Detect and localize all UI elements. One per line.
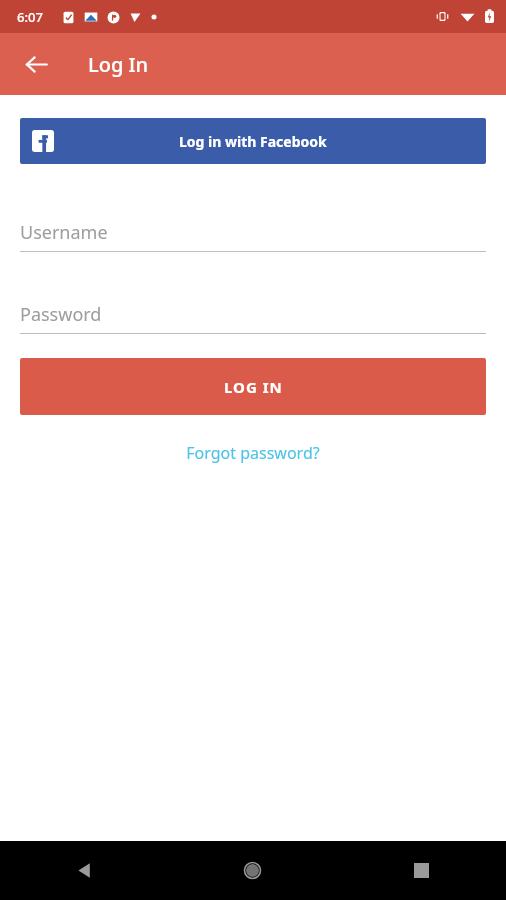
staticText: LOG IN (224, 377, 283, 397)
button[interactable]: Recent apps (337, 841, 506, 900)
staticText: Log In (88, 51, 149, 78)
button[interactable]: Password (20, 302, 486, 334)
staticText: Username (20, 220, 108, 245)
button[interactable]: Forgot password? (174, 438, 332, 468)
staticText: 6:07 (17, 8, 43, 26)
button[interactable]: LOG IN (20, 358, 486, 415)
staticText: Log in with Facebook (179, 132, 327, 151)
staticText: Password (20, 302, 102, 327)
button[interactable]: Back (14, 42, 58, 86)
button[interactable]: Log in with Facebook (20, 118, 486, 164)
button[interactable]: Back (0, 841, 168, 900)
button[interactable]: Username (20, 220, 486, 252)
staticText: Forgot password? (186, 442, 320, 464)
button[interactable]: Home (168, 841, 337, 900)
